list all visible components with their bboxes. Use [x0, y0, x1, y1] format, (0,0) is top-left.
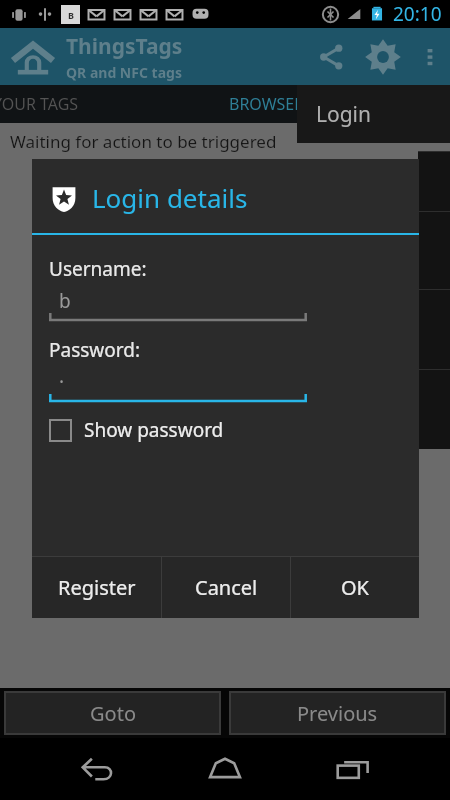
button[interactable]: BROWSER	[229, 93, 305, 115]
staticText: Login	[316, 100, 372, 129]
staticText: B	[68, 9, 74, 21]
staticText: Waiting for action to be triggered	[10, 130, 277, 153]
button[interactable]: Share	[308, 33, 356, 81]
button[interactable]: Goto	[5, 692, 220, 734]
staticText: Username:	[49, 256, 147, 282]
button[interactable]: Show password	[49, 417, 224, 443]
staticText: ThingsTags	[66, 32, 183, 61]
button[interactable]: Cancel	[162, 557, 290, 618]
staticText: Register	[58, 574, 136, 601]
staticText: Password:	[49, 337, 141, 363]
button[interactable]: ·	[49, 369, 307, 403]
button[interactable]: Settings	[356, 30, 410, 84]
button[interactable]: b	[49, 288, 307, 322]
button[interactable]: More options	[410, 37, 450, 77]
button[interactable]: Back	[68, 739, 128, 799]
button[interactable]: Register	[32, 557, 161, 618]
button[interactable]: Home	[195, 739, 255, 799]
staticText: 20:10	[393, 1, 442, 27]
staticText: b	[59, 288, 71, 314]
staticText: OK	[341, 574, 369, 601]
staticText: Cancel	[195, 574, 258, 601]
staticText: Goto	[90, 700, 136, 727]
button[interactable]: Recent apps	[323, 739, 383, 799]
button[interactable]: YOUR TAGS	[0, 93, 79, 115]
staticText: QR and NFC tags	[66, 63, 182, 82]
button[interactable]: Previous	[230, 692, 445, 734]
staticText: Login details	[92, 180, 248, 215]
staticText: Previous	[297, 700, 378, 727]
button[interactable]: Login	[297, 85, 450, 143]
staticText: Show password	[84, 417, 224, 443]
button[interactable]: OK	[291, 557, 419, 618]
staticText: ·	[59, 369, 65, 395]
